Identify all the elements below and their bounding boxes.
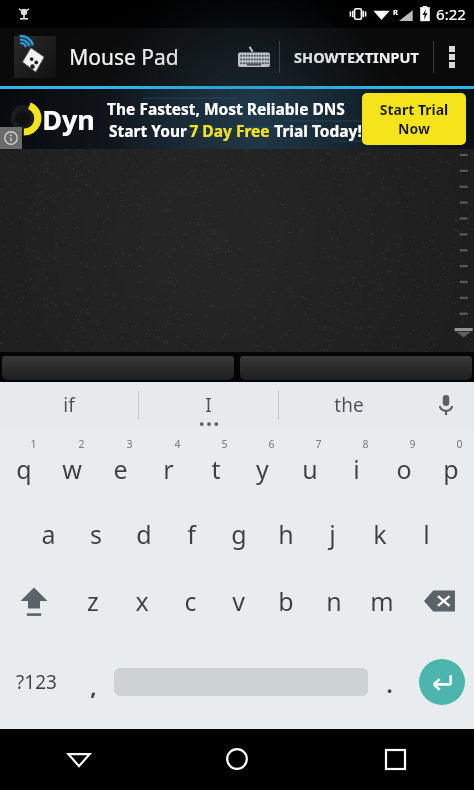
button[interactable]: Left click — [2, 356, 234, 380]
button[interactable]: I — [139, 382, 278, 428]
button[interactable]: 3 — [96, 428, 144, 500]
button[interactable]: 4 — [144, 428, 192, 500]
button[interactable]: Space — [114, 634, 368, 729]
staticText: 6 — [268, 437, 275, 451]
staticText: g — [231, 517, 247, 551]
button[interactable]: c — [166, 567, 214, 634]
staticText: t — [211, 452, 221, 486]
button[interactable]: Enter — [410, 634, 474, 729]
button[interactable]: 7 — [286, 428, 333, 500]
button[interactable]: 1 — [0, 428, 48, 500]
staticText: w — [62, 452, 82, 486]
button[interactable]: Shift — [0, 567, 68, 634]
staticText: 9 — [409, 437, 416, 451]
staticText: h — [278, 517, 294, 551]
button[interactable]: 9 — [380, 428, 427, 500]
staticText: k — [373, 517, 387, 551]
button[interactable]: Start Trial Now — [362, 93, 466, 145]
staticText: b — [278, 584, 294, 618]
staticText: Dyn — [42, 101, 95, 138]
button[interactable]: l — [403, 500, 450, 567]
staticText: 3 — [126, 437, 133, 451]
staticText: if — [63, 392, 75, 418]
staticText: a — [41, 517, 56, 551]
staticText: z — [87, 584, 99, 618]
button[interactable]: if — [0, 382, 138, 428]
button[interactable]: b — [262, 567, 310, 634]
staticText: The Fastest, Most Reliable DNS — [107, 98, 345, 119]
staticText: 6:22 — [436, 4, 466, 24]
button[interactable]: the — [279, 382, 418, 428]
button[interactable]: Home — [158, 729, 316, 789]
button[interactable]: Backspace — [406, 567, 474, 634]
staticText: m — [370, 584, 394, 618]
button[interactable]: Voice input — [418, 382, 474, 428]
staticText: r — [163, 452, 174, 486]
staticText: 7 Day Free — [189, 120, 270, 141]
button[interactable]: x — [117, 567, 166, 634]
staticText: x — [135, 584, 149, 618]
staticText: j — [329, 517, 336, 551]
staticText: y — [256, 452, 269, 486]
staticText: SHOWTEXTINPUT — [294, 47, 419, 67]
button[interactable]: f — [168, 500, 215, 567]
button[interactable]: z — [68, 567, 117, 634]
staticText: Trial Today! — [270, 120, 362, 141]
staticText: 2 — [78, 437, 85, 451]
button[interactable]: d — [120, 500, 168, 567]
staticText: 4 — [174, 437, 181, 451]
button[interactable]: Recent apps — [316, 729, 474, 789]
staticText: Start Your — [107, 120, 189, 141]
button[interactable]: s — [72, 500, 120, 567]
staticText: s — [90, 517, 102, 551]
button[interactable]: m — [358, 567, 406, 634]
button[interactable]: Back — [0, 729, 158, 789]
button[interactable]: Ad info — [0, 127, 22, 149]
staticText: 8 — [362, 437, 369, 451]
staticText: . — [386, 669, 393, 699]
staticText: o — [396, 452, 412, 486]
button[interactable]: g — [215, 500, 262, 567]
button[interactable]: 0 — [427, 428, 474, 500]
staticText: the — [334, 392, 364, 418]
button[interactable]: Keyboard — [229, 28, 279, 86]
button[interactable]: k — [356, 500, 403, 567]
staticText: I — [205, 392, 212, 418]
staticText: Mouse Pad — [69, 43, 179, 72]
button[interactable]: 8 — [333, 428, 380, 500]
staticText: v — [232, 584, 245, 618]
staticText: i — [353, 452, 360, 486]
button[interactable]: App icon — [14, 36, 56, 78]
staticText: 5 — [221, 437, 228, 451]
staticText: 7 — [315, 437, 322, 451]
button[interactable]: h — [262, 500, 309, 567]
button[interactable]: a — [24, 500, 72, 567]
staticText: R — [393, 7, 398, 17]
staticText: l — [423, 517, 430, 551]
button[interactable]: Touch pad — [0, 149, 474, 352]
staticText: , — [90, 671, 97, 701]
button[interactable]: j — [309, 500, 356, 567]
staticText: 1 — [30, 437, 37, 451]
button[interactable]: 2 — [48, 428, 96, 500]
button[interactable]: v — [214, 567, 262, 634]
staticText: d — [136, 517, 152, 551]
button[interactable]: Dyn — [0, 89, 474, 149]
staticText: n — [326, 584, 342, 618]
button[interactable]: Right click — [240, 356, 472, 380]
button[interactable]: . — [368, 634, 410, 729]
staticText: c — [184, 584, 197, 618]
staticText: e — [113, 452, 128, 486]
button[interactable]: Scroll — [446, 149, 474, 352]
button[interactable]: n — [310, 567, 358, 634]
staticText: ?123 — [16, 669, 57, 695]
button[interactable]: , — [72, 634, 114, 729]
staticText: Start Trial Now — [371, 100, 457, 138]
staticText: u — [302, 452, 318, 486]
button[interactable]: 6 — [239, 428, 286, 500]
button[interactable]: SHOWTEXTINPUT — [280, 28, 433, 86]
button[interactable]: ?123 — [0, 634, 72, 729]
staticText: f — [187, 517, 196, 551]
button[interactable]: More options — [434, 28, 470, 86]
button[interactable]: 5 — [192, 428, 239, 500]
